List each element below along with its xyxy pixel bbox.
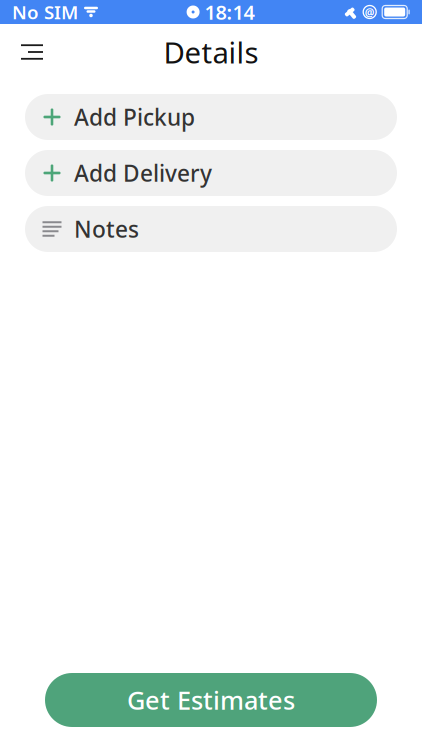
button[interactable]: Get Estimates [45, 673, 377, 727]
button[interactable]: Notes [25, 206, 397, 252]
staticText: No SIM [12, 0, 78, 24]
button[interactable]: Menu [10, 30, 54, 74]
staticText: Details [163, 32, 258, 71]
staticText: 18:14 [205, 0, 255, 25]
staticText: Get Estimates [127, 683, 295, 717]
staticText: Notes [74, 214, 139, 244]
button[interactable]: Add Pickup [25, 94, 397, 140]
staticText: Add Pickup [74, 102, 195, 132]
staticText: @ [365, 5, 375, 19]
staticText: Add Delivery [74, 158, 212, 188]
button[interactable]: Add Delivery [25, 150, 397, 196]
